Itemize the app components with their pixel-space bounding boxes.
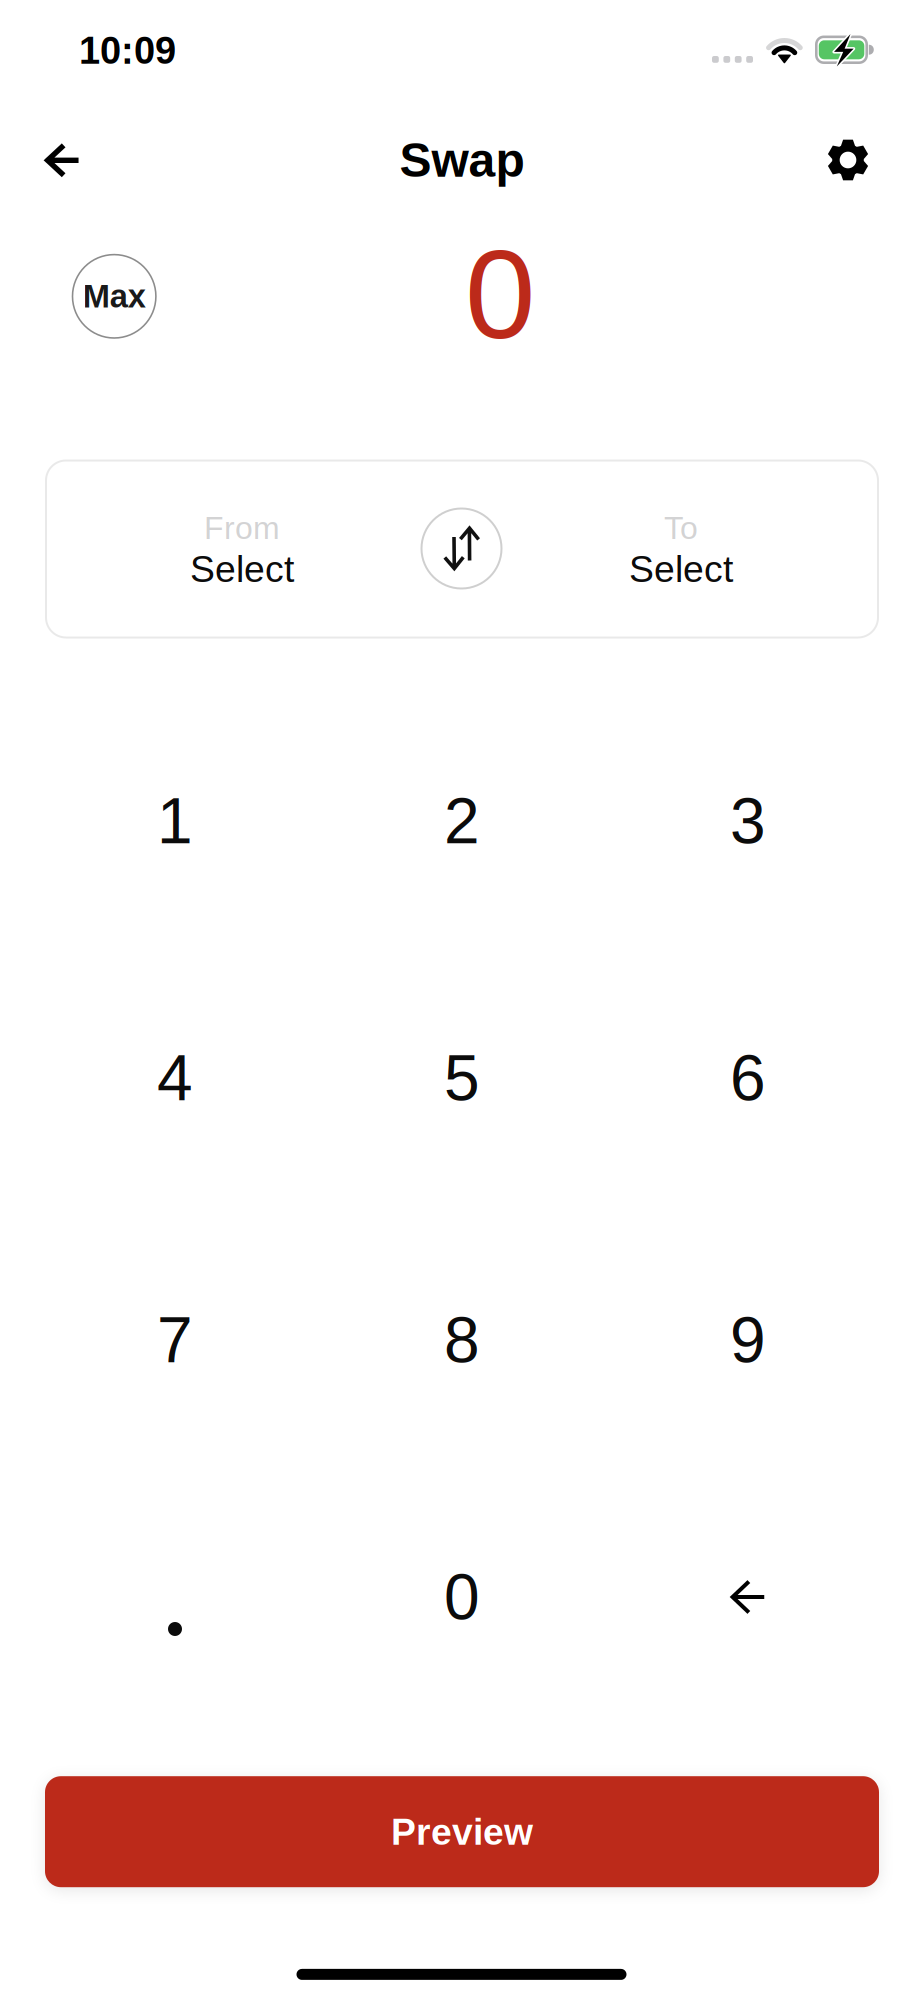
staticText: 7: [157, 1304, 193, 1376]
button[interactable]: 0: [319, 1472, 605, 1722]
button[interactable]: 1: [32, 696, 318, 946]
staticText: 8: [444, 1304, 480, 1376]
button[interactable]: Decimal point: [32, 1504, 318, 1754]
button[interactable]: Settings: [798, 110, 898, 210]
staticText: Swap: [399, 133, 524, 187]
staticText: Preview: [391, 1811, 533, 1852]
button[interactable]: Back: [12, 110, 112, 210]
staticText: 9: [730, 1304, 766, 1376]
button[interactable]: 5: [319, 953, 605, 1203]
staticText: 1: [157, 785, 193, 857]
button[interactable]: 9: [605, 1215, 891, 1465]
button[interactable]: 4: [32, 953, 318, 1203]
button[interactable]: 7: [32, 1215, 318, 1465]
button[interactable]: 2: [319, 696, 605, 946]
staticText: Select: [629, 548, 733, 590]
staticText: To: [664, 510, 698, 546]
button[interactable]: Swap direction: [420, 507, 502, 589]
staticText: 5: [444, 1042, 480, 1114]
button[interactable]: Preview: [45, 1776, 879, 1887]
staticText: Max: [83, 278, 146, 315]
button[interactable]: 6: [605, 953, 891, 1203]
staticText: From: [204, 510, 280, 546]
button[interactable]: Max: [72, 254, 157, 339]
staticText: 0: [465, 223, 535, 365]
staticText: 2: [444, 785, 480, 857]
staticText: 10:09: [79, 29, 176, 72]
button[interactable]: 8: [319, 1215, 605, 1465]
staticText: 4: [157, 1042, 193, 1114]
staticText: Select: [190, 548, 294, 590]
staticText: 3: [730, 785, 766, 857]
button[interactable]: Delete: [605, 1472, 891, 1722]
staticText: 6: [730, 1042, 766, 1114]
staticText: 0: [444, 1561, 480, 1633]
button[interactable]: 3: [605, 696, 891, 946]
